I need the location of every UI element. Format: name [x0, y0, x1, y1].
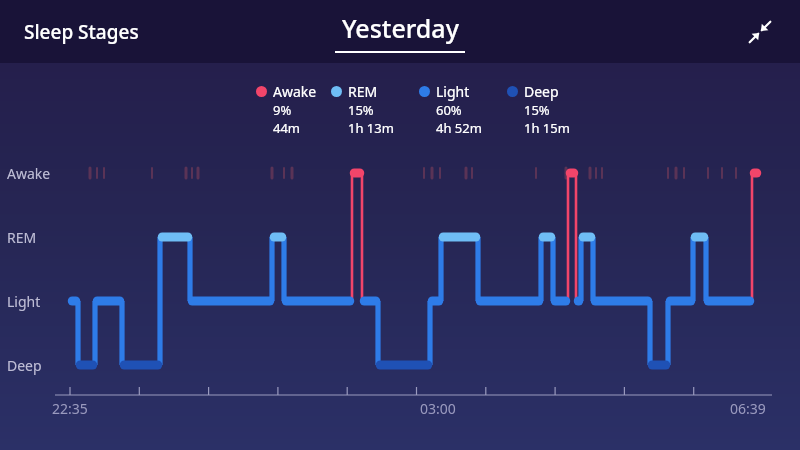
staticText: 22:35 [52, 399, 88, 418]
staticText: Yesterday [342, 11, 459, 45]
staticText: 44m [273, 119, 301, 137]
staticText: 15% [348, 101, 374, 119]
staticText: Awake [273, 82, 317, 101]
staticText: Deep [7, 356, 42, 375]
staticText: 1h 15m [524, 119, 570, 137]
staticText: 06:39 [730, 399, 766, 418]
staticText: 60% [436, 101, 462, 119]
staticText: Sleep Stages [24, 19, 139, 45]
staticText: 15% [524, 101, 550, 119]
staticText: REM [348, 82, 378, 101]
staticText: 03:00 [420, 399, 456, 418]
staticText: REM [7, 228, 37, 247]
staticText: Light [7, 292, 41, 311]
button[interactable]: REM [331, 82, 419, 137]
button[interactable]: Awake [256, 82, 331, 137]
button[interactable]: Light [419, 82, 507, 137]
staticText: Light [436, 82, 470, 101]
staticText: 4h 52m [436, 119, 482, 137]
button[interactable]: Collapse [740, 12, 780, 52]
staticText: Deep [524, 82, 559, 101]
staticText: Awake [7, 164, 51, 183]
staticText: 9% [273, 101, 292, 119]
button[interactable]: Yesterday [335, 11, 465, 53]
staticText: 1h 13m [348, 119, 394, 137]
button[interactable]: Deep [507, 82, 587, 137]
